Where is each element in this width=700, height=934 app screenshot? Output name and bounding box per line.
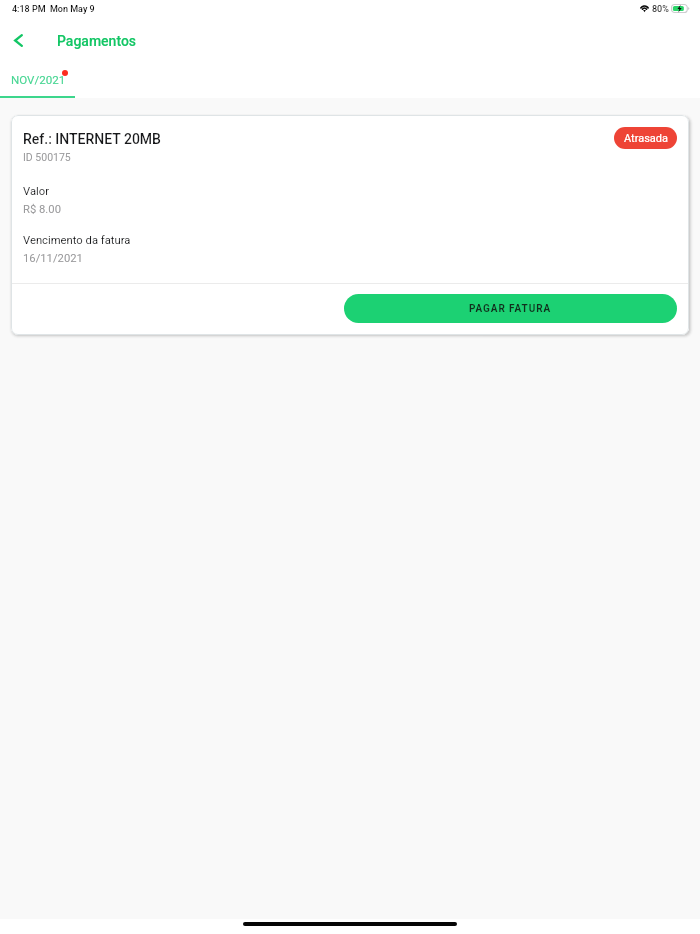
staticText: Atrasada xyxy=(624,132,669,145)
staticText: ID 500175 xyxy=(23,151,71,163)
button[interactable]: Back xyxy=(2,24,34,56)
button[interactable]: Pagamentos xyxy=(50,24,145,56)
staticText: Valor xyxy=(23,185,49,198)
staticText: R$ 8.00 xyxy=(23,203,61,216)
staticText: Pagamentos xyxy=(57,33,137,49)
staticText: 4:18 PM xyxy=(12,4,46,15)
staticText: Mon May 9 xyxy=(50,4,95,15)
button[interactable]: Atrasada xyxy=(614,127,677,149)
button[interactable]: PAGAR FATURA xyxy=(344,294,677,323)
staticText: 16/11/2021 xyxy=(23,252,83,265)
staticText: Ref.: INTERNET 20MB xyxy=(23,131,161,147)
staticText: Vencimento da fatura xyxy=(23,234,131,247)
staticText: PAGAR FATURA xyxy=(469,303,552,315)
staticText: 80% xyxy=(652,4,669,15)
button[interactable]: NOV/2021 xyxy=(0,66,75,98)
staticText: NOV/2021 xyxy=(11,73,66,87)
